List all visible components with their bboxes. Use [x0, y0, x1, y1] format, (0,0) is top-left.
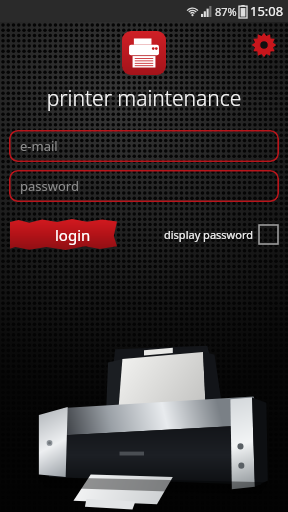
staticText: 87%	[215, 4, 237, 19]
staticText: password	[20, 177, 79, 195]
button[interactable]: password	[9, 170, 279, 202]
staticText: display password	[164, 227, 253, 242]
button[interactable]: Settings	[250, 31, 278, 59]
button[interactable]: login	[10, 219, 117, 250]
button[interactable]: display password	[164, 225, 278, 244]
staticText: login	[55, 225, 91, 245]
staticText: printer maintenance	[0, 84, 288, 113]
button[interactable]: e-mail	[9, 130, 279, 162]
button[interactable]: Printer	[122, 31, 166, 75]
staticText: 15:08	[250, 2, 284, 20]
staticText: e-mail	[20, 137, 58, 155]
